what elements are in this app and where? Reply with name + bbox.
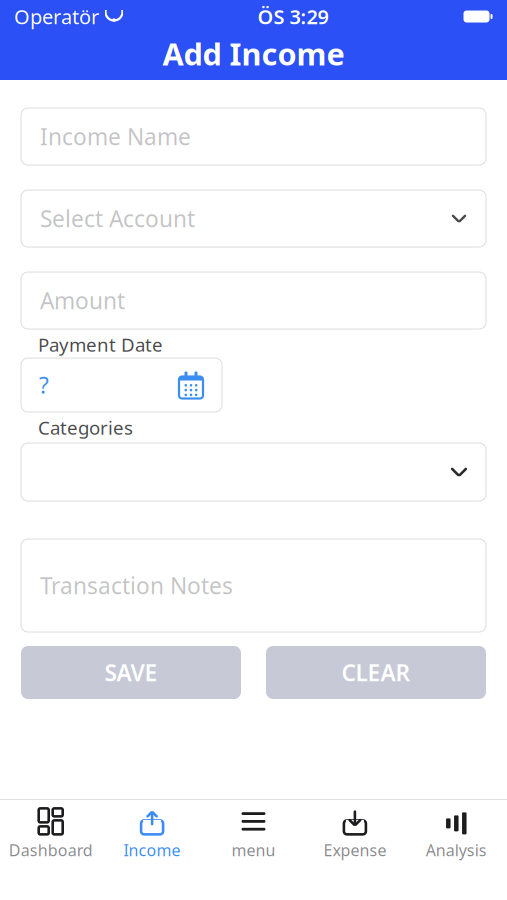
staticText: Expense — [323, 839, 386, 861]
staticText: Amount — [40, 285, 125, 315]
button[interactable]: menu — [203, 797, 304, 867]
staticText: Select Account — [40, 203, 195, 233]
staticText: Analysis — [426, 839, 487, 861]
staticText: Dashboard — [9, 839, 93, 861]
staticText: Income Name — [40, 121, 191, 151]
staticText: Categories — [38, 415, 133, 440]
staticText: Operatör — [14, 3, 99, 30]
staticText: Payment Date — [38, 332, 163, 357]
button[interactable]: Amount — [21, 272, 486, 329]
staticText: Add Income — [162, 33, 344, 74]
staticText: Transaction Notes — [40, 570, 233, 600]
staticText: menu — [231, 839, 275, 861]
button[interactable]: Analysis — [406, 797, 507, 867]
button[interactable]: Income — [101, 797, 203, 867]
button[interactable]: Select Account — [21, 190, 486, 247]
button[interactable]: Pick date — [178, 371, 204, 399]
button[interactable]: Transaction Notes — [21, 539, 486, 632]
button[interactable]: Income Name — [21, 108, 486, 165]
staticText: CLEAR — [341, 657, 410, 687]
staticText: ? — [39, 370, 49, 400]
staticText: Income — [124, 839, 181, 861]
button[interactable]: Expense — [304, 797, 406, 867]
staticText: ÖS 3:29 — [257, 3, 328, 30]
button[interactable]: SAVE — [21, 646, 241, 699]
button[interactable]: CLEAR — [266, 646, 486, 699]
staticText: SAVE — [104, 657, 157, 687]
button[interactable]: Dashboard — [0, 797, 101, 867]
